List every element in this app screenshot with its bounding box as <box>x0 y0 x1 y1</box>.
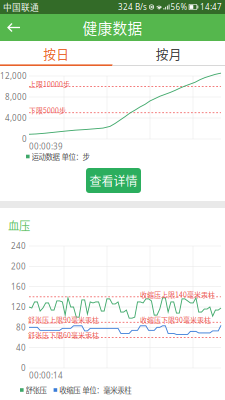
staticText: 舒张压上限90毫米汞柱 <box>28 315 99 325</box>
staticText: 8,000 <box>5 92 27 102</box>
staticText: 56% <box>170 2 187 12</box>
staticText: 舒张压下限60毫米汞柱 <box>28 330 99 340</box>
button[interactable]: Back <box>0 14 28 40</box>
staticText: 40 <box>16 342 26 353</box>
staticText: 舒张压 <box>26 385 47 395</box>
staticText: 120 <box>11 302 26 312</box>
staticText: 0 <box>21 363 26 373</box>
staticText: 健康数据 <box>82 17 142 38</box>
button[interactable]: 按月 <box>112 41 225 66</box>
staticText: 收缩压下限90毫米汞柱 <box>140 315 211 325</box>
button[interactable]: 按日 <box>0 41 112 66</box>
staticText: 160 <box>11 281 26 292</box>
staticText: 240 <box>11 241 26 251</box>
staticText: 收缩压上限140毫米汞柱 <box>140 289 215 299</box>
staticText: 80 <box>16 322 26 333</box>
staticText: 按月 <box>156 44 182 63</box>
staticText: 14:47 <box>200 2 222 12</box>
button[interactable]: 查看详情 <box>86 168 141 193</box>
staticText: 324 B/s <box>118 2 147 12</box>
staticText: 下限5000步 <box>29 105 66 115</box>
staticText: 200 <box>11 261 26 272</box>
staticText: 中国联通 <box>3 1 39 13</box>
staticText: 按日 <box>43 44 69 63</box>
staticText: 查看详情 <box>89 172 137 189</box>
staticText: 上限10000步 <box>29 79 70 89</box>
staticText: 血压 <box>8 217 30 233</box>
staticText: 收缩压 单位：毫米汞柱 <box>59 385 131 395</box>
staticText: 00:00:14 <box>29 370 63 381</box>
staticText: 运动数据 单位：步 <box>32 151 90 162</box>
staticText: 0 <box>22 134 27 144</box>
staticText: 12,000 <box>0 71 27 81</box>
staticText: 00:00:39 <box>29 141 63 152</box>
staticText: 4,000 <box>5 113 27 123</box>
